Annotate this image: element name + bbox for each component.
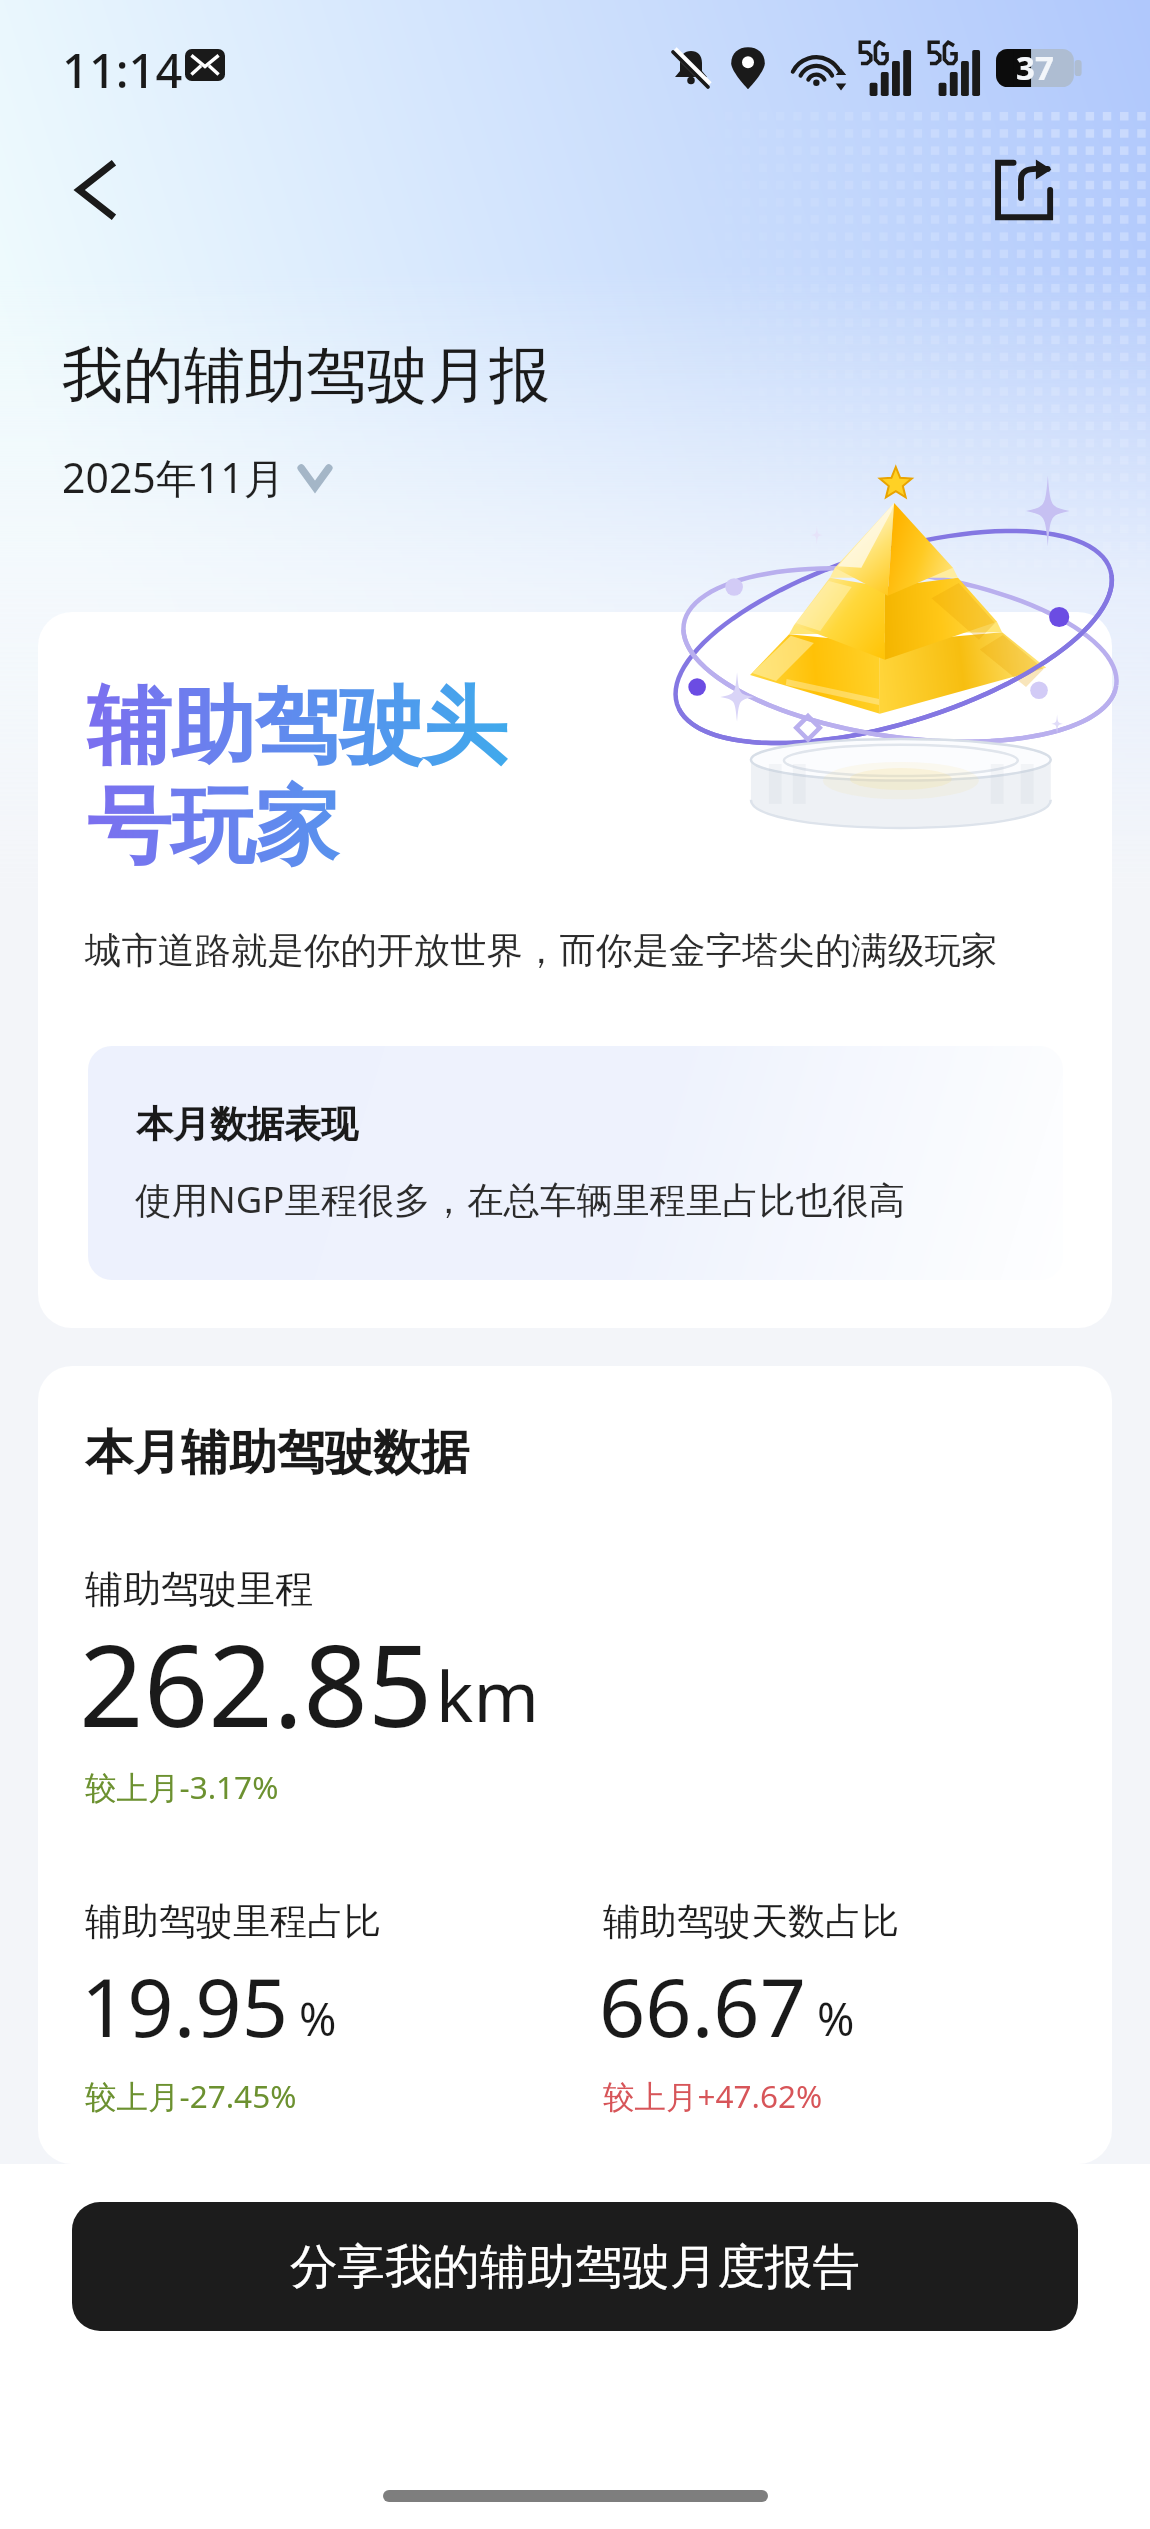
staticText: 19.95 <box>81 1950 289 2060</box>
staticText: km <box>436 1647 539 1742</box>
staticText: 使用NGP里程很多，在总车辆里程里占比也很高 <box>135 1174 905 1224</box>
staticText: 本月辅助驾驶数据 <box>85 1423 469 1483</box>
staticText: 分享我的辅助驾驶月度报告 <box>290 2237 860 2297</box>
staticText: 较上月+47.62% <box>603 2074 823 2117</box>
button[interactable]: Back <box>45 142 145 238</box>
button[interactable]: 2025年11月 <box>62 449 330 505</box>
button[interactable]: 分享我的辅助驾驶月度报告 <box>72 2202 1078 2331</box>
staticText: % <box>817 1988 855 2049</box>
staticText: 较上月-27.45% <box>85 2074 297 2117</box>
staticText: % <box>299 1988 337 2049</box>
staticText: 我的辅助驾驶月报 <box>62 337 550 414</box>
staticText: 11:14 <box>62 38 183 102</box>
staticText: 262.85 <box>79 1606 433 1760</box>
staticText: 本月数据表现 <box>136 1101 358 1148</box>
staticText: 辅助驾驶里程占比 <box>85 1898 381 1945</box>
staticText: 城市道路就是你的开放世界，而你是金字塔尖的满级玩家 <box>85 928 998 974</box>
staticText: 辅助驾驶头 号玩家 <box>87 674 507 880</box>
staticText: 辅助驾驶天数占比 <box>603 1898 899 1945</box>
staticText: 37 <box>1016 45 1054 90</box>
staticText: 66.67 <box>599 1950 807 2060</box>
button[interactable]: Share <box>971 142 1071 238</box>
staticText: 辅助驾驶里程 <box>85 1565 313 1613</box>
staticText: 2025年11月 <box>62 449 285 505</box>
staticText: 较上月-3.17% <box>85 1765 279 1808</box>
